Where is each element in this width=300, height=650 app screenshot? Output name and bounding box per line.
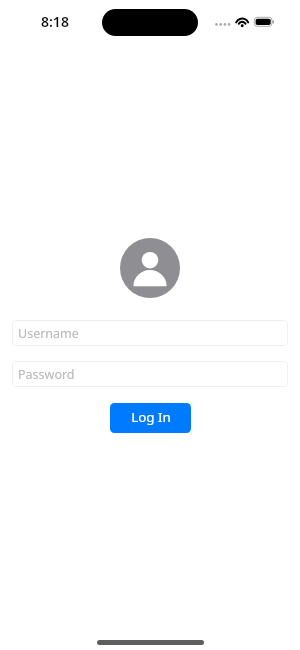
- staticText: Log In: [131, 408, 171, 426]
- button[interactable]: Log In: [110, 403, 191, 433]
- staticText: Username: [18, 325, 79, 342]
- button[interactable]: Password: [12, 361, 288, 387]
- staticText: 8:18: [41, 12, 69, 31]
- staticText: Password: [18, 366, 75, 383]
- button[interactable]: Username: [12, 320, 288, 346]
